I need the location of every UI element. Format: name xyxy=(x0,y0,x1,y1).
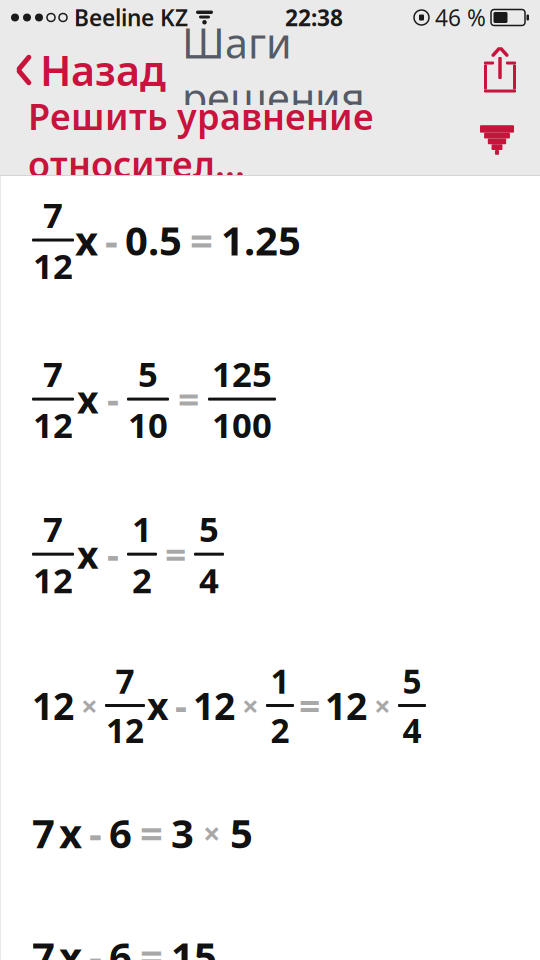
staticText: 1 xyxy=(132,506,152,552)
staticText: x xyxy=(77,374,99,424)
staticText: 5 xyxy=(138,351,158,397)
staticText: 7 xyxy=(115,659,134,703)
staticText: = xyxy=(140,806,163,859)
staticText: Beeline KZ xyxy=(74,2,188,32)
staticText: - xyxy=(107,374,119,424)
staticText: 2 xyxy=(132,557,152,603)
staticText: 7 xyxy=(43,506,63,552)
staticText: × xyxy=(374,686,391,725)
staticText: 12 xyxy=(32,681,74,730)
staticText: 1.25 xyxy=(221,213,301,267)
staticText: 7 xyxy=(32,929,55,960)
staticText: x xyxy=(75,213,98,267)
staticText: 15 xyxy=(171,929,217,960)
staticText: = xyxy=(140,929,163,960)
staticText: 5 xyxy=(199,506,219,552)
staticText: - xyxy=(175,681,187,730)
staticText: 22:38 xyxy=(285,2,343,32)
staticText: 7 xyxy=(43,351,63,397)
staticText: = xyxy=(165,529,186,579)
staticText: 10 xyxy=(128,402,168,448)
staticText: × xyxy=(242,686,259,725)
button[interactable]: Решить уравнение относител... xyxy=(0,105,540,175)
button[interactable]: Назад xyxy=(0,37,166,103)
staticText: - xyxy=(105,213,118,267)
staticText: 4 xyxy=(199,557,219,603)
staticText: x xyxy=(77,529,99,579)
staticText: = xyxy=(299,681,320,730)
staticText: 125 xyxy=(212,351,272,397)
staticText: x xyxy=(147,681,169,730)
staticText: 7 xyxy=(43,191,63,237)
staticText: 0.5 xyxy=(125,213,182,267)
staticText: 12 xyxy=(33,402,73,448)
staticText: 4 xyxy=(402,708,421,752)
staticText: 12 xyxy=(33,557,73,603)
staticText: Решить уравнение относител... xyxy=(28,92,374,188)
staticText: x xyxy=(59,929,82,960)
staticText: × xyxy=(81,686,98,725)
staticText: 3 xyxy=(171,806,194,859)
staticText: = xyxy=(190,213,213,267)
staticText: 2 xyxy=(270,708,289,752)
staticText: 6 xyxy=(109,929,132,960)
button[interactable]: Поделиться xyxy=(480,43,540,97)
staticText: 12 xyxy=(193,681,235,730)
staticText: - xyxy=(89,929,102,960)
staticText: 7 xyxy=(32,806,55,859)
staticText: - xyxy=(107,529,119,579)
staticText: = xyxy=(178,374,199,424)
staticText: 12 xyxy=(33,242,73,288)
staticText: x xyxy=(59,806,82,859)
staticText: 1 xyxy=(270,659,289,703)
staticText: 12 xyxy=(106,708,144,752)
staticText: 6 xyxy=(109,806,132,859)
staticText: 5 xyxy=(230,806,253,859)
staticText: 5 xyxy=(402,659,421,703)
staticText: Назад xyxy=(40,43,166,97)
staticText: × xyxy=(203,812,221,853)
staticText: Шаги решения xyxy=(182,15,365,125)
staticText: - xyxy=(89,806,102,859)
staticText: 12 xyxy=(325,681,367,730)
staticText: 46 % xyxy=(435,2,486,32)
staticText: 100 xyxy=(212,402,272,448)
